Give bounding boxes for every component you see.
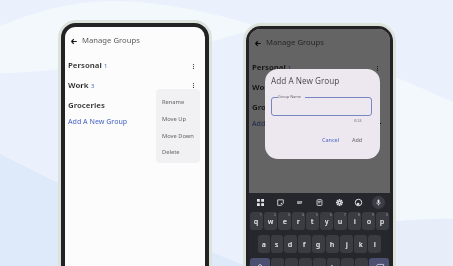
button[interactable]: v xyxy=(313,258,326,266)
staticText: 7 xyxy=(344,213,346,217)
button[interactable]: y xyxy=(320,212,333,230)
button[interactable]: m xyxy=(355,258,368,266)
button[interactable]: Apps xyxy=(251,195,270,210)
staticText: GIF xyxy=(297,201,303,205)
staticText: Add A New Group xyxy=(271,75,340,86)
staticText: Work xyxy=(68,80,89,91)
staticText: 1 xyxy=(288,64,292,72)
button[interactable]: k xyxy=(354,235,367,253)
button[interactable]: More options for Work xyxy=(370,80,384,94)
button[interactable]: Personal xyxy=(252,61,390,75)
staticText: 1 xyxy=(104,62,108,70)
button[interactable]: Work xyxy=(252,81,390,95)
button[interactable]: l xyxy=(368,235,381,253)
button[interactable]: i xyxy=(348,212,361,230)
button[interactable]: Cancel xyxy=(321,134,341,144)
button[interactable]: Move Down xyxy=(156,129,200,143)
staticText: Groceries xyxy=(252,102,289,113)
staticText: d xyxy=(288,240,293,249)
staticText: h xyxy=(330,240,335,249)
staticText: Delete xyxy=(162,148,180,156)
button[interactable]: Back xyxy=(250,36,265,51)
staticText: e xyxy=(283,217,287,226)
staticText: 5 xyxy=(316,213,318,217)
button[interactable]: c xyxy=(299,258,312,266)
button[interactable]: More options for Personal xyxy=(186,59,200,73)
button[interactable]: Move Up xyxy=(156,112,200,126)
staticText: u xyxy=(338,217,343,226)
staticText: Personal xyxy=(252,62,286,73)
staticText: w xyxy=(268,217,274,226)
button[interactable]: q xyxy=(250,212,263,230)
button[interactable]: t xyxy=(306,212,319,230)
button[interactable] xyxy=(271,97,372,116)
button[interactable]: o xyxy=(362,212,375,230)
button[interactable]: u xyxy=(334,212,347,230)
staticText: 3 xyxy=(288,213,290,217)
staticText: 0/24 xyxy=(354,118,362,123)
button[interactable]: Groceries xyxy=(68,99,205,113)
button[interactable]: z xyxy=(271,258,284,266)
staticText: i xyxy=(354,217,356,226)
button[interactable]: j xyxy=(340,235,353,253)
staticText: Manage Groups xyxy=(266,37,324,47)
button[interactable]: x xyxy=(285,258,298,266)
button[interactable]: d xyxy=(284,235,297,253)
button[interactable]: Add A New Group xyxy=(252,117,321,130)
staticText: Add xyxy=(352,136,363,143)
staticText: a xyxy=(262,240,266,249)
button[interactable]: Theme xyxy=(349,195,368,210)
button[interactable]: w xyxy=(264,212,277,230)
staticText: 2 xyxy=(274,213,276,217)
button[interactable]: More options for Work xyxy=(186,78,200,92)
staticText: 8 xyxy=(358,213,360,217)
button[interactable]: Back xyxy=(66,34,81,49)
button[interactable]: Backspace xyxy=(369,258,389,266)
button[interactable]: p xyxy=(376,212,389,230)
staticText: Rename xyxy=(162,98,185,106)
button[interactable]: Add A New Group xyxy=(68,115,137,128)
button[interactable]: Add xyxy=(350,134,364,144)
button[interactable]: h xyxy=(326,235,339,253)
button[interactable]: g xyxy=(312,235,325,253)
button[interactable]: e xyxy=(278,212,291,230)
button[interactable]: Personal xyxy=(68,59,205,73)
button[interactable]: s xyxy=(271,235,283,253)
button[interactable]: n xyxy=(341,258,354,266)
staticText: Groceries xyxy=(68,100,105,111)
staticText: o xyxy=(367,217,371,226)
button[interactable]: Delete xyxy=(156,145,200,159)
button[interactable]: Settings xyxy=(330,195,349,210)
staticText: l xyxy=(374,240,376,249)
button[interactable]: Sticker xyxy=(271,195,290,210)
button[interactable]: Clipboard xyxy=(310,195,329,210)
button[interactable]: Shift xyxy=(250,258,270,266)
button[interactable]: More options for Groceries xyxy=(370,101,384,115)
staticText: b xyxy=(331,263,336,266)
staticText: k xyxy=(359,240,363,249)
button[interactable]: Work xyxy=(68,79,205,93)
staticText: Personal xyxy=(68,60,102,71)
button[interactable]: Groceries xyxy=(252,101,390,115)
button[interactable]: Voice input xyxy=(369,195,388,210)
staticText: Add A New Group xyxy=(68,117,128,127)
button[interactable]: Add a new group xyxy=(370,116,384,130)
button[interactable]: GIF xyxy=(290,195,309,210)
button[interactable]: More options for Personal xyxy=(370,61,384,75)
button[interactable]: a xyxy=(258,235,270,253)
staticText: g xyxy=(316,240,321,249)
staticText: 0 xyxy=(386,213,388,217)
staticText: j xyxy=(346,240,348,249)
button[interactable]: f xyxy=(298,235,311,253)
staticText: 9 xyxy=(372,213,374,217)
staticText: Group Name xyxy=(278,94,301,99)
button[interactable]: Rename xyxy=(156,95,200,109)
button[interactable]: b xyxy=(327,258,340,266)
button[interactable]: r xyxy=(292,212,305,230)
staticText: Work xyxy=(252,82,273,93)
